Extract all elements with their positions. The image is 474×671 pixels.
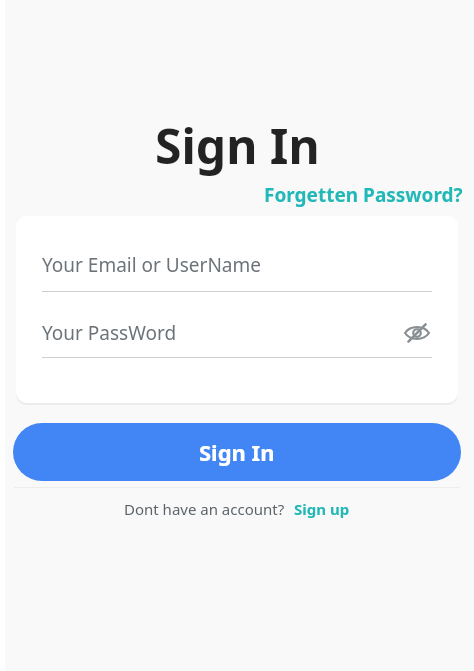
staticText: Your PassWord bbox=[42, 320, 402, 346]
button[interactable]: Sign In bbox=[13, 423, 461, 481]
staticText: Dont have an account? bbox=[124, 499, 285, 519]
button[interactable]: Show password bbox=[402, 318, 432, 348]
staticText: Forgetten Password? bbox=[264, 182, 463, 208]
button[interactable]: Sign up bbox=[294, 499, 350, 519]
staticText: Your Email or UserName bbox=[42, 252, 261, 278]
button[interactable]: Your PassWord bbox=[42, 318, 432, 348]
staticText: Sign In bbox=[199, 437, 275, 467]
staticText: Sign In bbox=[155, 113, 320, 178]
button[interactable]: Forgetten Password? bbox=[264, 182, 474, 208]
staticText: Sign up bbox=[294, 499, 350, 519]
button[interactable]: Your Email or UserName bbox=[42, 252, 432, 278]
